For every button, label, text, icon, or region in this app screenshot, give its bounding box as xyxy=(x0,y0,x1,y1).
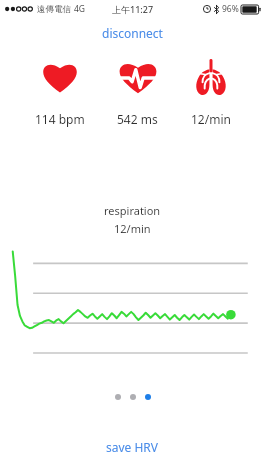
staticText: 12/min xyxy=(191,111,231,127)
button[interactable]: Heart rate variability xyxy=(111,57,164,129)
staticText: respiration xyxy=(104,203,161,218)
button[interactable]: save HRV xyxy=(92,436,173,458)
staticText: save HRV xyxy=(106,439,159,455)
button[interactable]: Respiration xyxy=(185,57,237,129)
button[interactable]: Heart rate xyxy=(29,57,91,129)
staticText: 114 bpm xyxy=(35,111,85,127)
button[interactable]: Page 1 xyxy=(115,394,121,400)
button[interactable]: Page 3 xyxy=(145,394,151,400)
staticText: 4G xyxy=(74,3,86,15)
staticText: 上午11:27 xyxy=(112,3,154,15)
button[interactable]: disconnect xyxy=(88,22,177,44)
staticText: 遠傳電信 xyxy=(37,4,71,15)
button[interactable]: Page 2 xyxy=(130,394,136,400)
staticText: 542 ms xyxy=(117,111,158,127)
staticText: disconnect xyxy=(102,25,163,41)
staticText: 12/min xyxy=(114,221,151,236)
staticText: 96% xyxy=(222,3,239,15)
